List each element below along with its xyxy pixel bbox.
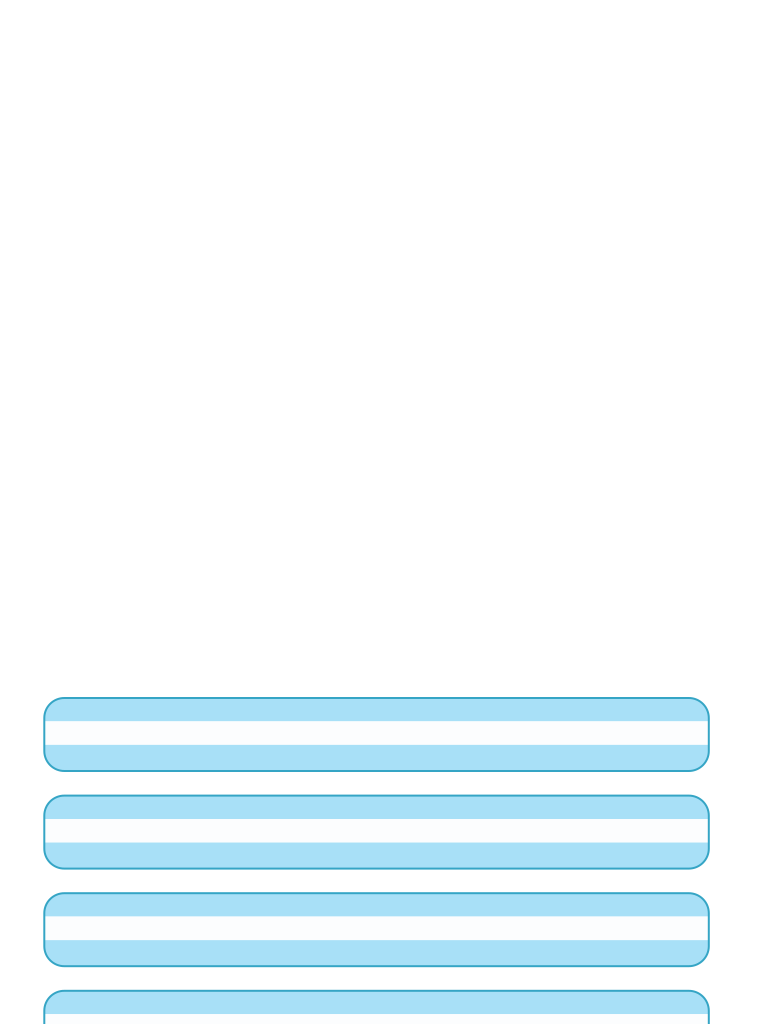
button[interactable]: Loading item: [44, 698, 709, 771]
button[interactable]: Loading item: [44, 796, 709, 869]
button[interactable]: Loading item: [44, 893, 709, 966]
button[interactable]: Loading item: [44, 991, 709, 1024]
